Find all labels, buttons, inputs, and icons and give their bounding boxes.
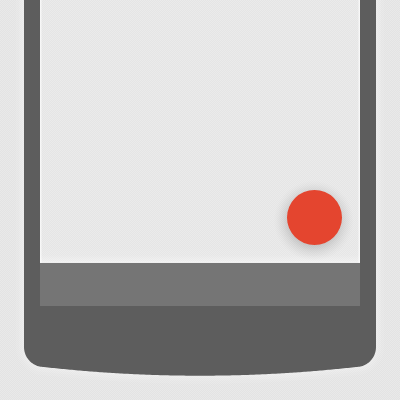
button[interactable]: Compose new item (287, 190, 342, 245)
